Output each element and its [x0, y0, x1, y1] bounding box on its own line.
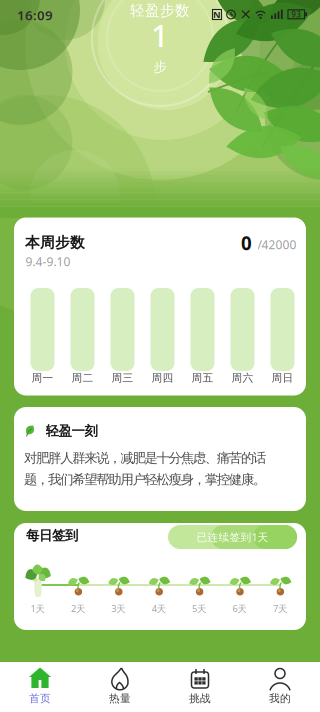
staticText: 3天: [111, 602, 125, 615]
staticText: 轻盈一刻: [45, 423, 97, 439]
staticText: /42000: [257, 236, 296, 252]
button[interactable]: 已连续签到1天: [168, 525, 297, 549]
staticText: 已连续签到1天: [196, 530, 268, 544]
staticText: 7天: [273, 602, 287, 615]
staticText: 周一: [31, 371, 53, 384]
staticText: 挑战: [189, 692, 211, 705]
staticText: 每日签到: [26, 527, 78, 544]
staticText: 热量: [109, 692, 131, 705]
staticText: 2天: [71, 602, 85, 615]
staticText: 1: [151, 15, 169, 55]
staticText: 步: [153, 59, 166, 75]
button[interactable]: 首页: [0, 662, 80, 712]
button[interactable]: 挑战: [160, 662, 240, 712]
staticText: 周五: [191, 371, 213, 384]
staticText: 6天: [232, 602, 246, 615]
staticText: 5天: [192, 602, 206, 615]
staticText: 16:09: [17, 6, 53, 24]
staticText: 93: [291, 9, 301, 20]
staticText: 本周步数: [25, 233, 85, 251]
staticText: 周六: [231, 371, 253, 384]
staticText: 我的: [269, 692, 291, 705]
staticText: 4天: [152, 602, 166, 615]
staticText: 周二: [71, 371, 93, 384]
staticText: 周四: [151, 371, 173, 384]
button[interactable]: 我的: [240, 662, 320, 712]
staticText: N: [213, 8, 221, 21]
staticText: 首页: [29, 692, 51, 705]
staticText: 周三: [111, 371, 133, 384]
button[interactable]: 热量: [80, 662, 160, 712]
staticText: 题，我们希望帮助用户轻松瘦身，掌控健康。: [24, 471, 266, 488]
staticText: 轻盈步数: [130, 1, 190, 19]
staticText: 9.4-9.10: [25, 253, 70, 269]
staticText: 周日: [271, 371, 293, 384]
staticText: 1天: [30, 602, 44, 615]
staticText: 对肥胖人群来说，减肥是十分焦虑、痛苦的话: [24, 450, 266, 466]
staticText: 0: [241, 231, 252, 255]
